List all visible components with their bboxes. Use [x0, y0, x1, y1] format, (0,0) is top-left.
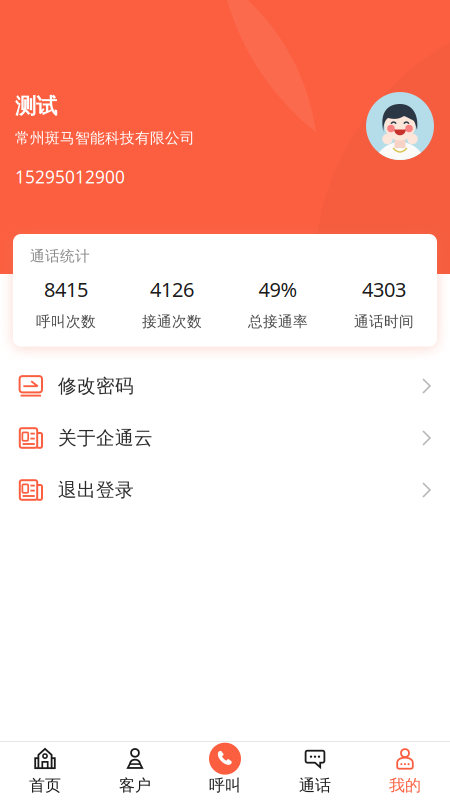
- staticText: 通话时间: [354, 313, 414, 331]
- staticText: 总接通率: [248, 313, 308, 331]
- staticText: 呼叫次数: [36, 313, 96, 331]
- staticText: 客户: [119, 776, 151, 795]
- staticText: 常州斑马智能科技有限公司: [15, 129, 195, 147]
- staticText: 关于企通云: [58, 426, 153, 449]
- staticText: 4126: [150, 276, 194, 303]
- staticText: 4303: [362, 276, 406, 303]
- staticText: 修改密码: [58, 374, 134, 397]
- button[interactable]: 首页: [0, 743, 90, 799]
- staticText: 接通次数: [142, 313, 202, 331]
- staticText: 8415: [44, 276, 88, 303]
- button[interactable]: 关于企通云: [0, 412, 450, 464]
- staticText: 退出登录: [58, 478, 134, 501]
- staticText: 通话: [299, 776, 331, 795]
- button[interactable]: 通话: [270, 743, 360, 799]
- staticText: 15295012900: [15, 165, 125, 188]
- button[interactable]: 修改密码: [0, 360, 450, 412]
- button[interactable]: 呼叫: [180, 743, 270, 799]
- staticText: 测试: [15, 93, 57, 119]
- staticText: 我的: [389, 776, 421, 795]
- staticText: 呼叫: [209, 776, 241, 795]
- button[interactable]: 客户: [90, 743, 180, 799]
- button[interactable]: 退出登录: [0, 464, 450, 516]
- staticText: 49%: [258, 276, 297, 303]
- button[interactable]: 我的: [360, 743, 450, 799]
- staticText: 通话统计: [30, 247, 90, 265]
- staticText: 首页: [29, 776, 61, 795]
